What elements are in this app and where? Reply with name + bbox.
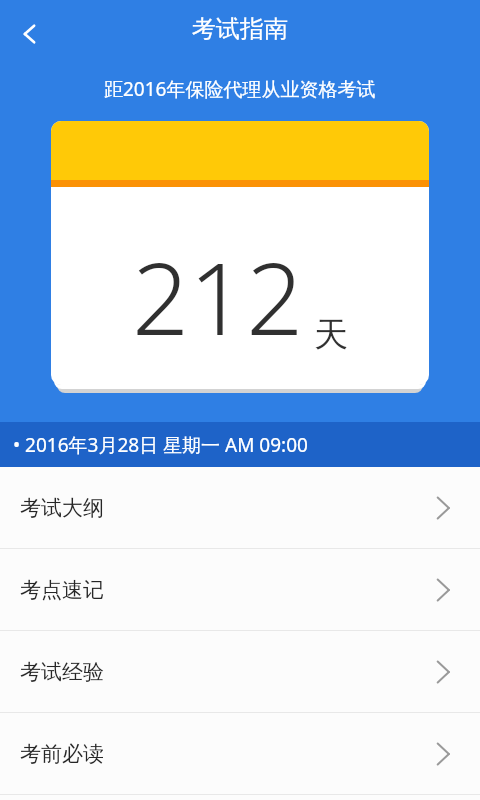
button[interactable]: 考试大纲 [0, 467, 480, 548]
button[interactable]: 考前必读 [0, 713, 480, 794]
button[interactable]: Back [4, 8, 56, 60]
staticText: 考试经验 [20, 659, 104, 685]
staticText: 考前必读 [20, 741, 104, 767]
button[interactable]: 考试经验 [0, 631, 480, 712]
button[interactable]: 212 [51, 121, 429, 385]
staticText: 考试大纲 [20, 495, 104, 521]
staticText: 天 [314, 313, 348, 356]
staticText: 212 [132, 228, 304, 364]
button[interactable]: 考点速记 [0, 549, 480, 630]
staticText: 距2016年保险代理从业资格考试 [104, 76, 376, 102]
staticText: 考试指南 [192, 14, 288, 44]
staticText: 考点速记 [20, 577, 104, 603]
staticText: • 2016年3月28日 星期一 AM 09:00 [13, 432, 308, 458]
